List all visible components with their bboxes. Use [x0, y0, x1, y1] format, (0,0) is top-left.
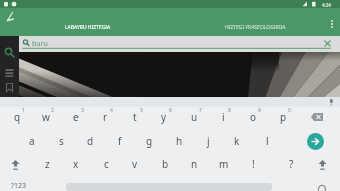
staticText: 2: [51, 107, 54, 114]
button[interactable]: h: [167, 131, 191, 151]
button[interactable]: i: [211, 107, 235, 127]
staticText: v: [132, 157, 138, 171]
staticText: 0: [288, 107, 291, 114]
staticText: k: [234, 134, 240, 148]
button[interactable]: t: [123, 107, 147, 127]
button[interactable]: HIZTEGI FRASEOLOGIKOA: [170, 8, 340, 36]
button[interactable]: p: [271, 107, 295, 127]
button[interactable]: f: [108, 131, 132, 151]
staticText: 8: [228, 107, 231, 114]
staticText: t: [133, 110, 137, 124]
staticText: HIZTEGI FRASEOLOGIKOA: [225, 24, 286, 31]
staticText: !: [252, 157, 255, 171]
button[interactable]: [307, 133, 324, 150]
button[interactable]: l: [255, 131, 279, 151]
button[interactable]: [0, 80, 19, 95]
staticText: p: [280, 110, 287, 124]
button[interactable]: ?: [279, 154, 303, 174]
button[interactable]: k: [225, 131, 249, 151]
staticText: h: [176, 134, 183, 148]
button[interactable]: r: [93, 107, 117, 127]
button[interactable]: w: [34, 107, 58, 127]
button[interactable]: x: [64, 154, 88, 174]
staticText: 1: [22, 107, 25, 114]
staticText: z: [45, 157, 50, 171]
staticText: 5: [140, 107, 143, 114]
staticText: 3: [81, 107, 84, 114]
button[interactable]: [312, 182, 332, 191]
staticText: s: [59, 134, 64, 148]
button[interactable]: q: [5, 107, 29, 127]
button[interactable]: z: [35, 154, 59, 174]
staticText: e: [73, 110, 79, 124]
staticText: LABAYRU HIZTEGIA: [65, 24, 111, 31]
staticText: l: [266, 134, 269, 148]
button[interactable]: j: [196, 131, 220, 151]
staticText: n: [191, 157, 198, 171]
button[interactable]: b: [153, 154, 177, 174]
staticText: ?123: [11, 181, 27, 191]
staticText: 6: [169, 107, 172, 114]
staticText: b: [162, 157, 169, 171]
staticText: i: [222, 110, 225, 124]
button[interactable]: [0, 43, 19, 62]
button[interactable]: [319, 36, 340, 52]
staticText: m: [219, 157, 229, 171]
button[interactable]: !: [241, 154, 265, 174]
staticText: 7: [199, 107, 202, 114]
staticText: 4: [110, 107, 113, 114]
button[interactable]: s: [49, 131, 73, 151]
button[interactable]: m: [212, 154, 236, 174]
staticText: o: [250, 110, 257, 124]
staticText: x: [73, 157, 79, 171]
button[interactable]: [4, 155, 26, 175]
staticText: buru: [32, 39, 48, 49]
staticText: a: [29, 134, 35, 148]
staticText: c: [104, 157, 109, 171]
button[interactable]: u: [182, 107, 206, 127]
staticText: j: [207, 134, 210, 148]
staticText: y: [161, 110, 167, 124]
staticText: r: [103, 110, 108, 124]
button[interactable]: a: [20, 131, 44, 151]
button[interactable]: [324, 12, 340, 32]
button[interactable]: v: [123, 154, 147, 174]
staticText: w: [42, 110, 50, 124]
button[interactable]: n: [182, 154, 206, 174]
button[interactable]: y: [152, 107, 176, 127]
button[interactable]: e: [64, 107, 88, 127]
button[interactable]: g: [137, 131, 161, 151]
button[interactable]: LABAYRU HIZTEGIA: [0, 8, 170, 36]
staticText: 9: [258, 107, 261, 114]
button[interactable]: d: [78, 131, 102, 151]
button[interactable]: [305, 107, 329, 127]
staticText: q: [14, 110, 21, 124]
button[interactable]: o: [241, 107, 265, 127]
button[interactable]: [0, 63, 19, 81]
button[interactable]: [311, 155, 333, 175]
staticText: d: [87, 134, 94, 148]
staticText: 4:24: [322, 2, 331, 8]
staticText: f: [118, 134, 122, 148]
button[interactable]: ?123: [4, 180, 34, 191]
staticText: g: [146, 134, 153, 148]
button[interactable]: c: [94, 154, 118, 174]
staticText: ?: [289, 157, 294, 171]
staticText: u: [191, 110, 198, 124]
